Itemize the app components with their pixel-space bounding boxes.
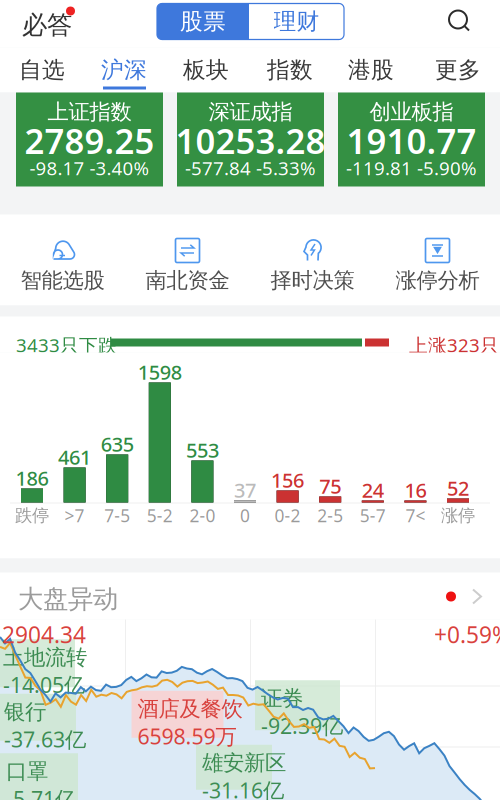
staticText: 156	[271, 467, 304, 493]
button[interactable]: 大盘异动	[0, 572, 500, 619]
staticText: 5-2	[147, 504, 173, 527]
staticText: 5-7	[360, 504, 386, 527]
staticText: 大盘异动	[18, 583, 118, 615]
staticText: 深证成指	[208, 99, 292, 125]
button[interactable]: 港股	[343, 47, 399, 92]
staticText: 3433只下跌	[16, 332, 117, 357]
staticText: 自选	[19, 56, 65, 84]
staticText: 2904.34	[2, 619, 86, 650]
staticText: 16	[404, 477, 426, 503]
staticText: -5.71亿	[6, 784, 76, 800]
button[interactable]: 指数	[262, 47, 318, 92]
staticText: 酒店及餐饮	[137, 696, 242, 722]
button[interactable]: 搜索	[438, 0, 482, 43]
staticText: -98.17 -3.40%	[29, 156, 149, 180]
staticText: 461	[58, 444, 91, 470]
staticText: 证券	[261, 685, 303, 711]
button[interactable]: 南北资金	[125, 230, 250, 300]
staticText: 上涨323只	[409, 332, 499, 357]
staticText: 股票	[180, 8, 226, 35]
staticText: 52	[447, 475, 469, 501]
button[interactable]: 深证成指	[177, 92, 324, 186]
staticText: -92.39亿	[261, 711, 343, 740]
button[interactable]: 创业板指	[338, 92, 485, 186]
staticText: 创业板指	[369, 99, 453, 125]
staticText: 银行	[4, 699, 46, 725]
staticText: 7-5	[104, 504, 130, 527]
staticText: 指数	[267, 56, 313, 84]
staticText: 2-0	[189, 504, 215, 527]
staticText: 1910.77	[346, 117, 476, 163]
staticText: 上证指数	[47, 99, 131, 125]
button[interactable]: 更多	[430, 47, 486, 92]
staticText: 口罩	[6, 758, 48, 784]
staticText: 涨停分析	[395, 267, 479, 294]
staticText: 0-2	[275, 504, 301, 527]
staticText: 更多	[435, 56, 481, 84]
staticText: 0	[240, 504, 250, 527]
staticText: 635	[101, 431, 134, 457]
staticText: 553	[186, 437, 219, 463]
staticText: -37.63亿	[4, 725, 86, 753]
staticText: 南北资金	[145, 267, 229, 294]
staticText: 理财	[273, 8, 319, 35]
staticText: 择时决策	[270, 267, 354, 294]
staticText: +0.59%	[434, 619, 500, 650]
staticText: 7<	[405, 504, 425, 527]
staticText: -577.84 -5.33%	[185, 156, 316, 180]
staticText: 2789.25	[24, 117, 154, 163]
button[interactable]: 上证指数	[16, 92, 163, 186]
staticText: -14.05亿	[3, 670, 85, 699]
button[interactable]: 涨停分析	[375, 230, 500, 300]
button[interactable]: 必答	[22, 0, 90, 43]
staticText: 6598.59万	[137, 722, 236, 750]
staticText: -119.81 -5.90%	[346, 156, 477, 180]
staticText: -31.16亿	[202, 776, 284, 800]
staticText: 沪深	[101, 56, 147, 84]
button[interactable]: 板块	[178, 47, 234, 92]
staticText: 跌停	[15, 505, 49, 526]
staticText: 智能选股	[20, 267, 104, 294]
staticText: 板块	[183, 56, 229, 84]
staticText: 186	[15, 465, 48, 491]
staticText: 涨停	[441, 505, 475, 526]
staticText: 雄安新区	[202, 750, 286, 776]
button[interactable]: 沪深	[96, 47, 152, 92]
staticText: 必答	[22, 9, 72, 41]
staticText: 土地流转	[3, 644, 87, 670]
button[interactable]: 股票	[157, 3, 344, 39]
staticText: 1598	[138, 359, 182, 385]
staticText: 2-5	[317, 504, 343, 527]
staticText: 75	[319, 473, 341, 499]
staticText: 10253.28	[175, 117, 325, 163]
staticText: 37	[234, 477, 256, 503]
button[interactable]: 择时决策	[250, 230, 375, 300]
button[interactable]: 自选	[14, 47, 70, 92]
staticText: 24	[362, 477, 384, 503]
staticText: >7	[65, 504, 85, 527]
staticText: 港股	[348, 56, 394, 84]
button[interactable]: 智能选股	[0, 230, 125, 300]
